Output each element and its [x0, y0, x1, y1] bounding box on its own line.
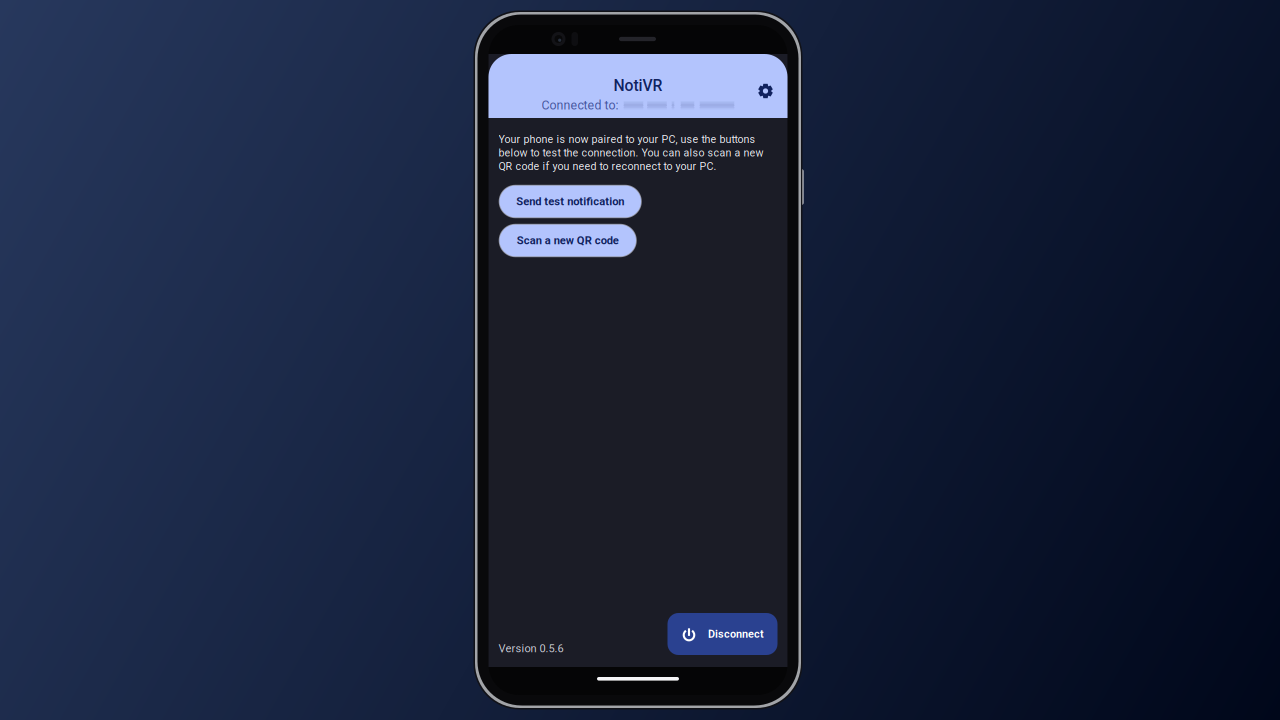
staticText: Scan a new QR code — [517, 234, 619, 247]
staticText: Send test notification — [516, 195, 624, 208]
staticText: Your phone is now paired to your PC, use… — [498, 133, 763, 172]
button[interactable]: Send test notification — [498, 184, 642, 218]
staticText: Connected to: — [541, 98, 618, 112]
staticText: Disconnect — [708, 628, 764, 640]
button[interactable]: Disconnect — [667, 613, 777, 655]
staticText: Version 0.5.6 — [498, 642, 563, 655]
staticText: NotiVR — [613, 76, 662, 95]
button[interactable]: Settings — [750, 76, 780, 106]
button[interactable]: Scan a new QR code — [498, 223, 637, 257]
